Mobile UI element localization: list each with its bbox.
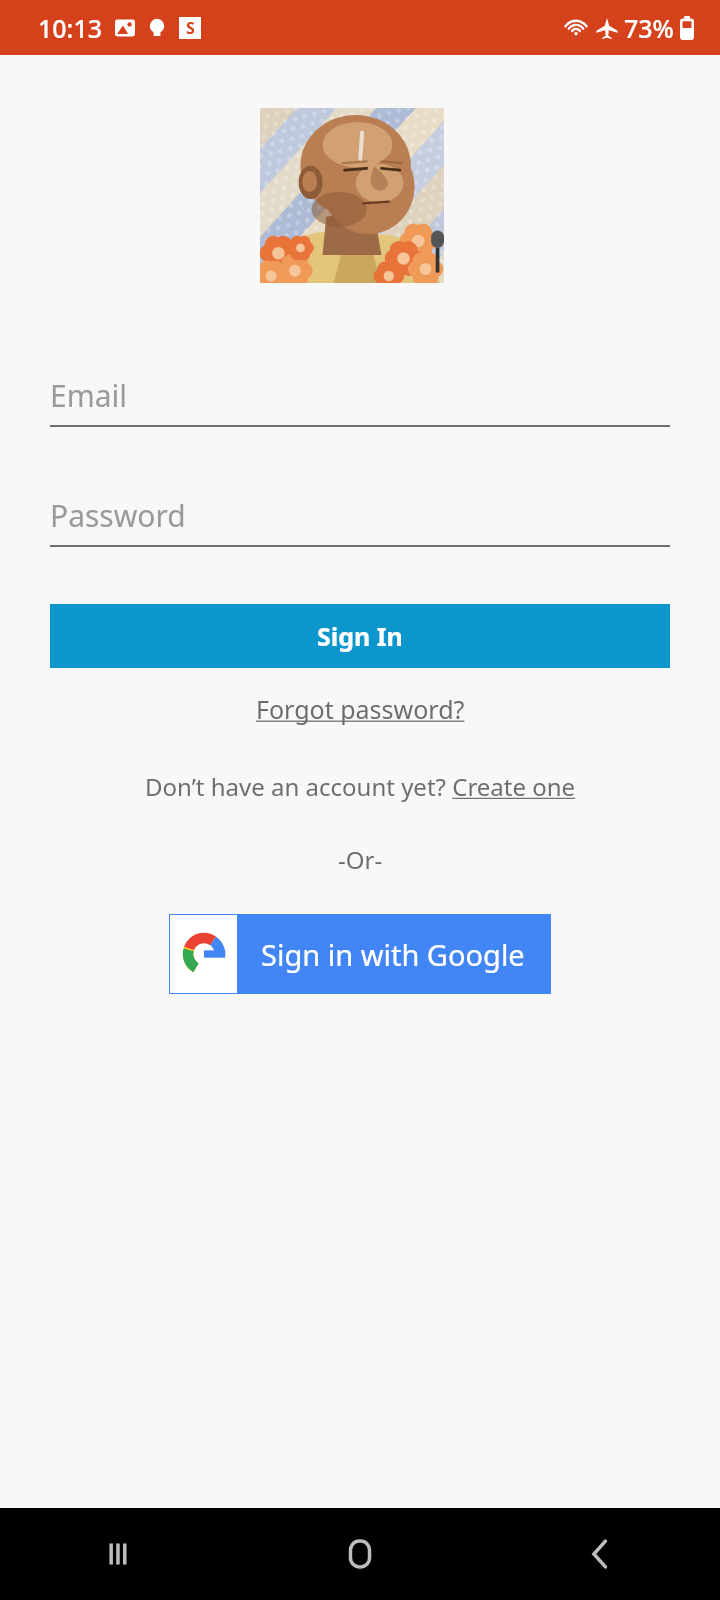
button[interactable]: Email: [50, 375, 670, 427]
staticText: Forgot password?: [256, 692, 465, 726]
button[interactable]: Sign in with Google: [169, 914, 551, 994]
button[interactable]: Back: [480, 1508, 720, 1600]
button[interactable]: Password: [50, 495, 670, 547]
button[interactable]: Home: [240, 1508, 480, 1600]
button[interactable]: Forgot password?: [246, 686, 475, 732]
button[interactable]: Don’t have an account yet? Create one: [135, 764, 586, 809]
button[interactable]: Recent apps: [0, 1508, 240, 1600]
staticText: 10:13: [38, 11, 103, 45]
staticText: S: [186, 17, 195, 39]
staticText: Email: [50, 375, 128, 416]
staticText: -Or-: [338, 843, 383, 876]
staticText: Password: [50, 495, 186, 536]
staticText: Sign In: [317, 619, 403, 653]
staticText: Sign in with Google: [261, 935, 525, 974]
staticText: 73%: [624, 11, 674, 45]
button[interactable]: Sign In: [50, 604, 670, 668]
staticText: Don’t have an account yet? Create one: [145, 770, 576, 803]
